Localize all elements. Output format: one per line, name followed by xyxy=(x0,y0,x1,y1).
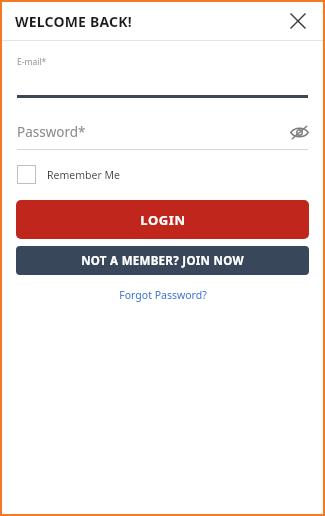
staticText: WELCOME BACK! xyxy=(15,12,132,31)
staticText: NOT A MEMBER? JOIN NOW xyxy=(81,253,244,269)
staticText: LOGIN xyxy=(140,211,186,229)
staticText: E-mail* xyxy=(17,56,47,68)
button[interactable]: LOGIN xyxy=(16,200,309,239)
staticText: Password* xyxy=(17,123,86,141)
button[interactable]: Close xyxy=(281,4,315,38)
button[interactable]: Remember Me xyxy=(17,163,128,186)
staticText: Remember Me xyxy=(47,168,120,182)
button[interactable]: NOT A MEMBER? JOIN NOW xyxy=(16,246,309,275)
button[interactable]: Show password xyxy=(285,120,313,144)
button[interactable]: Forgot Password? xyxy=(113,285,213,305)
